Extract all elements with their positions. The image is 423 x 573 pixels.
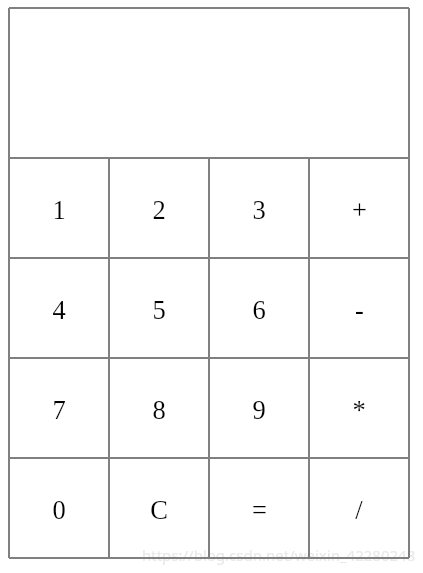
button[interactable]: 0 — [9, 458, 109, 558]
staticText: 4 — [52, 295, 66, 324]
button[interactable]: 2 — [109, 158, 209, 258]
button[interactable]: 3 — [209, 158, 309, 258]
staticText: 8 — [152, 395, 166, 424]
button[interactable]: 6 — [209, 258, 309, 358]
staticText: 7 — [52, 395, 66, 424]
staticText: = — [252, 495, 267, 524]
staticText: 2 — [152, 195, 166, 224]
button[interactable]: 9 — [209, 358, 309, 458]
button[interactable]: Clear — [109, 458, 209, 558]
staticText: - — [355, 295, 364, 324]
button[interactable]: 5 — [109, 258, 209, 358]
staticText: 5 — [152, 295, 166, 324]
button[interactable]: Equals — [209, 458, 309, 558]
staticText: 3 — [252, 195, 266, 224]
staticText: https://blog.csdn.net/weixin_42280248 — [142, 545, 416, 565]
button[interactable]: 4 — [9, 258, 109, 358]
staticText: 9 — [252, 395, 266, 424]
button[interactable]: 7 — [9, 358, 109, 458]
staticText: / — [355, 495, 363, 524]
staticText: + — [352, 195, 367, 224]
staticText: C — [150, 495, 168, 524]
button[interactable]: Calculator display — [9, 8, 409, 158]
staticText: 6 — [252, 295, 266, 324]
button[interactable]: Minus — [309, 258, 409, 358]
button[interactable]: Multiply — [309, 358, 409, 458]
button[interactable]: Divide — [309, 458, 409, 558]
button[interactable]: Plus — [309, 158, 409, 258]
staticText: 1 — [52, 195, 66, 224]
staticText: * — [352, 395, 366, 424]
button[interactable]: 1 — [9, 158, 109, 258]
staticText: 0 — [52, 495, 66, 524]
button[interactable]: 8 — [109, 358, 209, 458]
